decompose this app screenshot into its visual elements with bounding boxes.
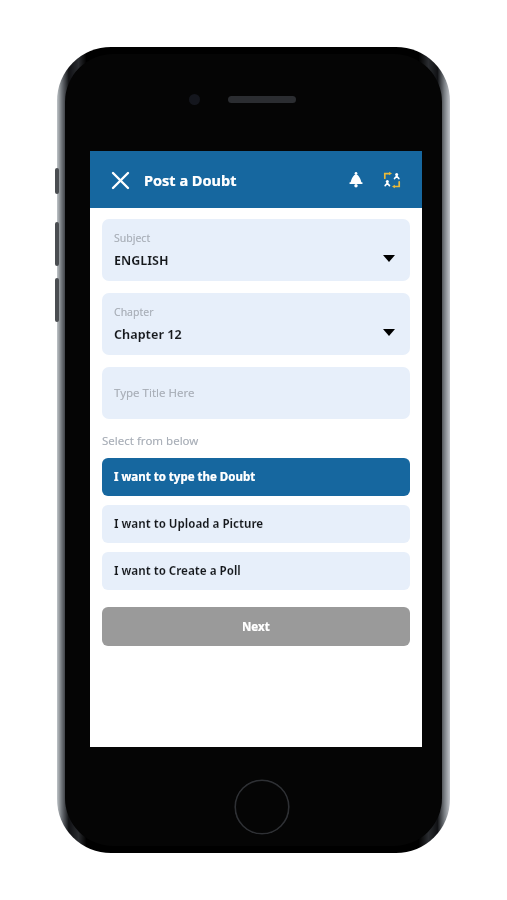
button[interactable]: Subject bbox=[102, 219, 410, 281]
button[interactable]: Refer a friend bbox=[377, 165, 407, 195]
staticText: Subject bbox=[114, 231, 151, 245]
button[interactable]: Next bbox=[102, 607, 410, 646]
button[interactable]: I want to type the Doubt bbox=[102, 458, 410, 496]
staticText: ENGLISH bbox=[114, 252, 169, 269]
button[interactable]: Chapter bbox=[102, 293, 410, 355]
staticText: I want to Upload a Picture bbox=[114, 516, 264, 532]
staticText: I want to type the Doubt bbox=[114, 469, 256, 485]
staticText: Chapter 12 bbox=[114, 326, 182, 343]
staticText: Select from below bbox=[102, 433, 199, 449]
staticText: I want to Create a Poll bbox=[114, 563, 241, 579]
staticText: Next bbox=[242, 619, 270, 635]
button[interactable]: I want to Upload a Picture bbox=[102, 505, 410, 543]
staticText: Post a Doubt bbox=[144, 170, 237, 190]
button[interactable]: Type Title Here bbox=[102, 367, 410, 419]
button[interactable]: I want to Create a Poll bbox=[102, 552, 410, 590]
staticText: Chapter bbox=[114, 305, 154, 319]
button[interactable]: Notifications bbox=[341, 165, 371, 195]
staticText: Type Title Here bbox=[114, 385, 195, 401]
button[interactable]: Close bbox=[105, 165, 135, 195]
